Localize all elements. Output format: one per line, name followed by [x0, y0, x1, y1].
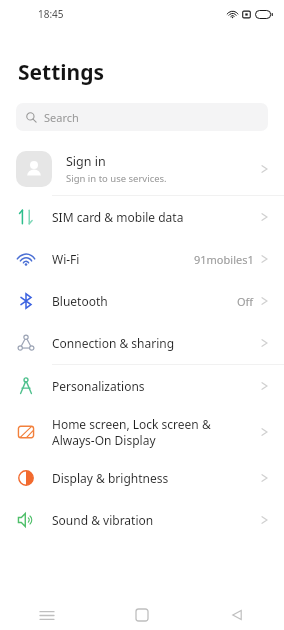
- button[interactable]: Bluetooth: [0, 280, 284, 322]
- button[interactable]: Display & brightness: [0, 457, 284, 499]
- staticText: Sound & vibration: [52, 512, 154, 528]
- button[interactable]: Home: [94, 600, 189, 630]
- staticText: 18:45: [38, 7, 64, 21]
- button[interactable]: Connection & sharing: [0, 322, 284, 364]
- button[interactable]: Sign in: [0, 143, 284, 195]
- button[interactable]: Sound & vibration: [0, 499, 284, 541]
- button[interactable]: Search: [16, 103, 268, 131]
- staticText: 91mobiles1: [194, 252, 254, 267]
- staticText: Off: [237, 294, 254, 309]
- staticText: Wi-Fi: [52, 251, 80, 267]
- staticText: Display & brightness: [52, 470, 169, 486]
- staticText: Bluetooth: [52, 293, 108, 309]
- staticText: Connection & sharing: [52, 335, 175, 351]
- button[interactable]: Recent apps: [0, 600, 94, 630]
- staticText: Sign in: [66, 153, 106, 170]
- staticText: Sign in to use services.: [66, 172, 167, 185]
- button[interactable]: Back: [189, 600, 284, 630]
- button[interactable]: Home screen, Lock screen & Always-On Dis…: [0, 407, 284, 457]
- staticText: Home screen, Lock screen & Always-On Dis…: [52, 416, 211, 448]
- staticText: SIM card & mobile data: [52, 209, 184, 225]
- staticText: Settings: [18, 58, 105, 87]
- staticText: Personalizations: [52, 378, 145, 394]
- button[interactable]: SIM card & mobile data: [0, 196, 284, 238]
- button[interactable]: Wi-Fi: [0, 238, 284, 280]
- button[interactable]: Personalizations: [0, 365, 284, 407]
- staticText: Search: [44, 110, 79, 125]
